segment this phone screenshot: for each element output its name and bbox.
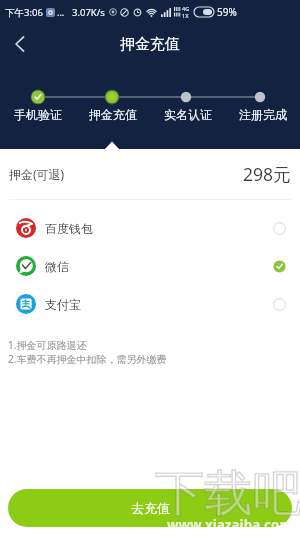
staticText: 百度钱包 [45,221,93,236]
button[interactable]: Back [0,24,40,64]
button[interactable]: 百度钱包 [0,209,300,247]
staticText: 押金充值 [120,35,180,54]
staticText: 押金(可退) [9,166,65,182]
staticText: 下载吧 [155,463,300,525]
staticText: 微信 [45,259,69,274]
staticText: 3.07K/s [72,6,105,19]
staticText: 实名认证 [164,107,212,122]
staticText: 1.押金可原路退还 [8,338,87,352]
staticText: 下载吧 [155,463,300,525]
staticText: 4G [182,5,190,12]
staticText: 押金充值 [89,107,137,122]
staticText: 298元 [243,162,291,186]
button[interactable]: 微信 [0,247,300,285]
staticText: 2.车费不再押金中扣除，需另外缴费 [8,352,167,366]
staticText: ... [57,6,65,18]
staticText: 注册完成 [239,107,287,122]
staticText: 手机验证 [14,107,62,122]
button[interactable]: 去充值 [8,489,292,527]
staticText: 59% [217,5,237,19]
staticText: 1X [182,12,189,19]
staticText: 支付宝 [45,297,81,312]
staticText: 去充值 [131,500,170,516]
staticText: www.xiazaiba.com [167,516,293,534]
staticText: 下午3:06 [5,6,43,19]
button[interactable]: 支付宝 [0,285,300,323]
